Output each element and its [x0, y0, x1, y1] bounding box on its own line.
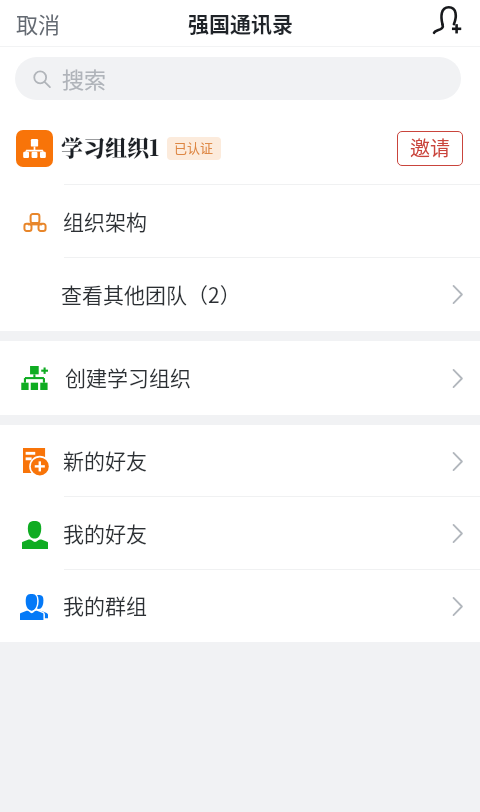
- staticText: 我的群组: [63, 590, 147, 620]
- staticText: 创建学习组织: [65, 362, 191, 392]
- staticText: 邀请: [410, 133, 450, 162]
- button[interactable]: 组织架构: [0, 185, 480, 258]
- staticText: 取消: [16, 7, 61, 38]
- button[interactable]: 新的好友: [0, 425, 480, 497]
- button[interactable]: 取消: [0, 0, 77, 47]
- button[interactable]: 查看其他团队（2）: [0, 258, 480, 331]
- staticText: 已认证: [174, 138, 214, 157]
- button[interactable]: 学习组织1: [0, 111, 480, 185]
- staticText: 学习组织1: [61, 131, 160, 163]
- staticText: 查看其他团队（2）: [61, 279, 241, 309]
- staticText: 强国通讯录: [188, 8, 293, 38]
- staticText: 组织架构: [63, 206, 147, 236]
- button[interactable]: 搜索: [15, 57, 461, 100]
- button[interactable]: 我的群组: [0, 570, 480, 642]
- staticText: 我的好友: [63, 518, 147, 548]
- staticText: 搜索: [62, 62, 107, 94]
- button[interactable]: Add contact: [420, 2, 480, 46]
- button[interactable]: 我的好友: [0, 497, 480, 570]
- button[interactable]: 创建学习组织: [0, 341, 480, 415]
- staticText: 新的好友: [63, 445, 147, 475]
- button[interactable]: 邀请: [397, 131, 463, 166]
